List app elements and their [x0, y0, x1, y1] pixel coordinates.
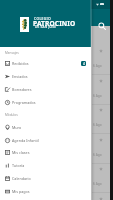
- staticText: 6 Ago: [93, 153, 102, 157]
- button[interactable]: Mis pagos: [0, 185, 91, 198]
- button[interactable]: 6 Ago: [92, 134, 113, 164]
- staticText: 6 Ago: [93, 94, 102, 98]
- staticText: Mensajes: [5, 51, 19, 55]
- staticText: 6 Ago: [93, 123, 102, 127]
- button[interactable]: Mis clases: [0, 146, 91, 159]
- button[interactable]: Recibidos: [0, 57, 91, 70]
- button[interactable]: Borradores: [0, 83, 91, 96]
- button[interactable]: Programados: [0, 96, 91, 109]
- staticText: Calendario: [12, 176, 31, 181]
- staticText: Tutoría: [12, 163, 25, 168]
- staticText: 4: [83, 61, 85, 66]
- button[interactable]: 6 Ago: [92, 163, 113, 193]
- staticText: Módulos: [5, 113, 18, 117]
- staticText: COLEGIO: [34, 16, 52, 21]
- staticText: 6 Ago: [93, 64, 102, 68]
- staticText: Programados: [12, 100, 36, 105]
- button[interactable]: 6 Ago: [92, 104, 113, 134]
- staticText: Recibidos: [12, 61, 29, 66]
- button[interactable]: 6 Ago: [92, 75, 113, 105]
- staticText: Agenda Infantil: [12, 138, 39, 143]
- staticText: Mis pagos: [12, 189, 30, 194]
- button[interactable]: 6 Ago: [92, 193, 113, 200]
- staticText: PATROCINIO: [33, 19, 76, 28]
- button[interactable]: Tutoría: [0, 159, 91, 172]
- button[interactable]: 6 Ago: [92, 45, 113, 75]
- staticText: DE SAN JOSE: [35, 25, 57, 29]
- button[interactable]: Agenda Infantil: [0, 134, 91, 147]
- button[interactable]: Calendario: [0, 172, 91, 185]
- button[interactable]: Search: [95, 19, 109, 33]
- button[interactable]: Enviados: [0, 70, 91, 83]
- staticText: 6 Ago: [93, 182, 102, 186]
- staticText: Mis clases: [12, 150, 30, 155]
- button[interactable]: COLEGIO: [0, 0, 91, 47]
- staticText: Enviados: [12, 74, 28, 79]
- staticText: Borradores: [12, 87, 32, 92]
- staticText: Muro: [12, 125, 22, 130]
- button[interactable]: Muro: [0, 121, 91, 134]
